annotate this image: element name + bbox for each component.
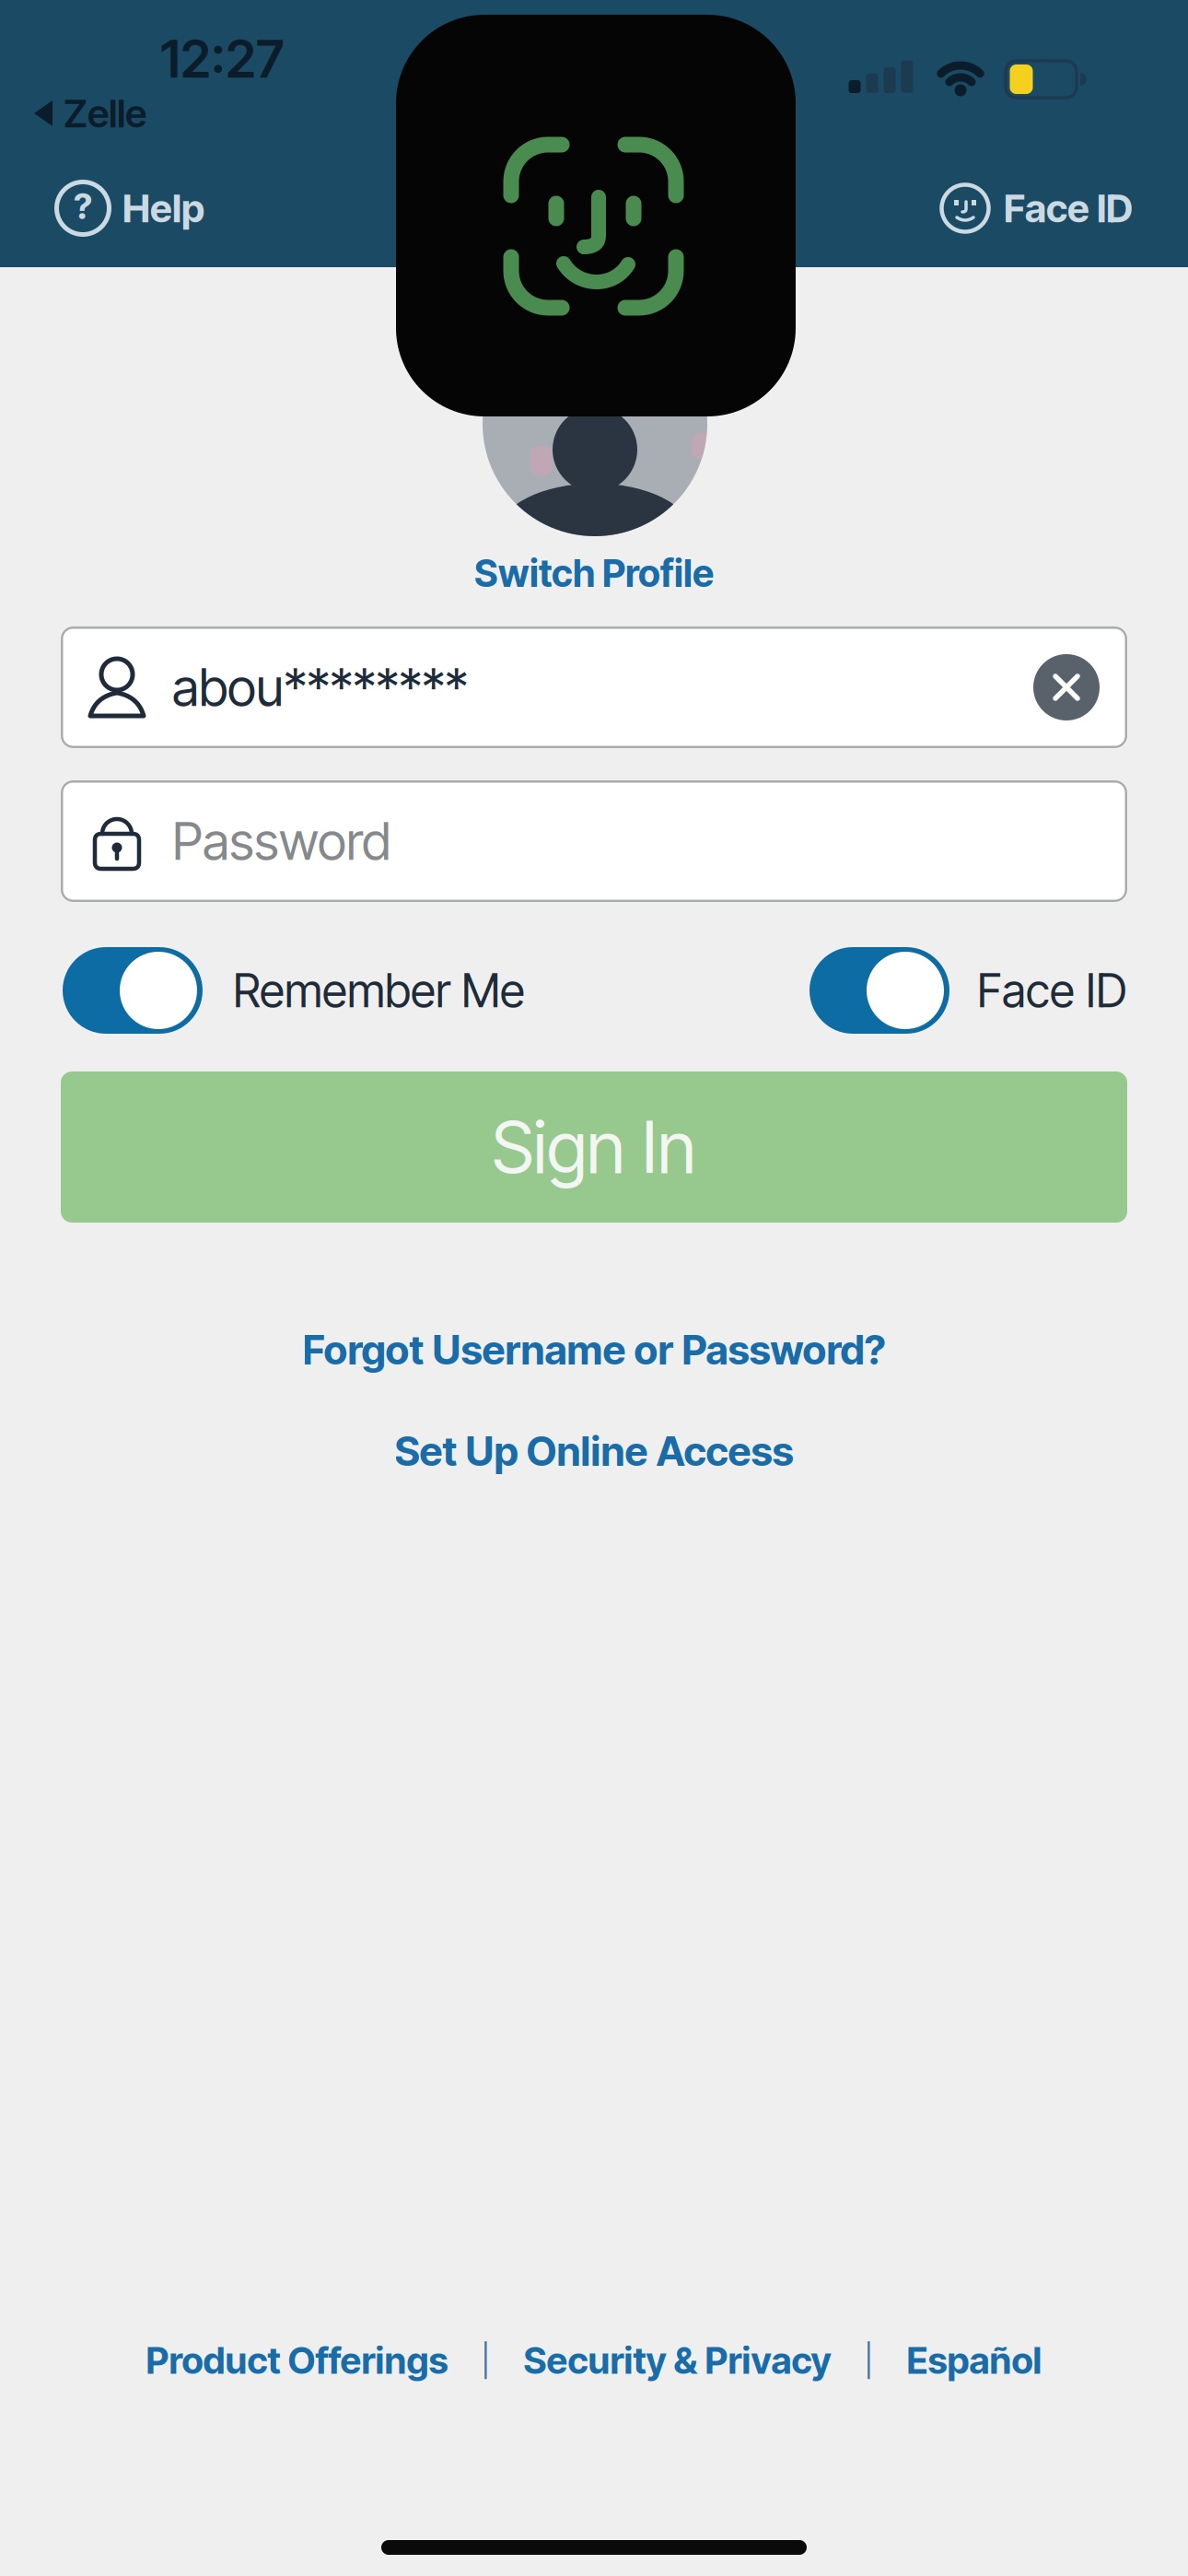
- button[interactable]: Switch Profile: [474, 550, 714, 596]
- staticText: abou********: [172, 656, 468, 719]
- button[interactable]: Sign In: [61, 1071, 1127, 1223]
- staticText: Forgot Username or Password?: [303, 1325, 885, 1374]
- staticText: Help: [122, 185, 204, 232]
- staticText: Security & Privacy: [524, 2338, 831, 2383]
- button[interactable]: ?: [0, 180, 1188, 237]
- staticText: Sign In: [492, 1104, 696, 1190]
- staticText: Face ID: [1004, 185, 1133, 232]
- button[interactable]: Product Offerings: [146, 2338, 448, 2383]
- staticText: Remember Me: [233, 963, 525, 1018]
- button[interactable]: Clear username: [1033, 654, 1100, 720]
- staticText: Español: [907, 2338, 1042, 2383]
- button[interactable]: Español: [907, 2338, 1042, 2383]
- staticText: Password: [172, 810, 390, 872]
- staticText: Face ID: [977, 963, 1127, 1018]
- staticText: |: [481, 2341, 490, 2379]
- button[interactable]: Remember Me: [63, 947, 203, 1034]
- staticText: Switch Profile: [474, 550, 714, 596]
- button[interactable]: Password: [61, 780, 1127, 902]
- staticText: Set Up Online Access: [395, 1427, 793, 1476]
- staticText: Product Offerings: [146, 2338, 448, 2383]
- button[interactable]: Set Up Online Access: [395, 1427, 793, 1476]
- button[interactable]: Security & Privacy: [524, 2338, 831, 2383]
- button[interactable]: Face ID: [809, 947, 949, 1034]
- button[interactable]: Face ID: [0, 182, 1188, 234]
- staticText: ?: [74, 185, 92, 228]
- staticText: Zelle: [64, 90, 146, 137]
- button[interactable]: abou********: [61, 626, 1127, 748]
- staticText: 12:27: [160, 28, 284, 90]
- button[interactable]: Forgot Username or Password?: [303, 1325, 885, 1374]
- staticText: |: [864, 2341, 874, 2379]
